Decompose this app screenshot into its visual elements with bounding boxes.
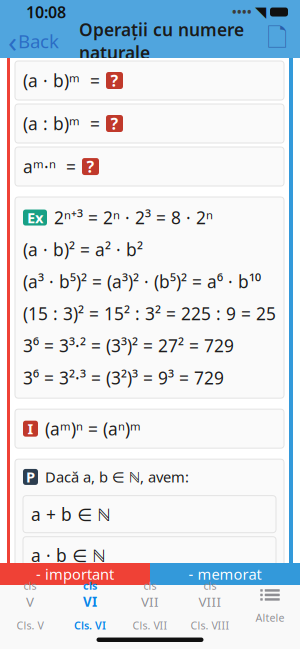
staticText: 🗋 (267, 20, 287, 62)
staticText: Altele (255, 610, 284, 625)
button[interactable]: - important (0, 563, 150, 585)
staticText: (15 : 3)² = 15² : 3² = 225 : 9 = 25 (23, 302, 276, 325)
staticText: cls (143, 578, 156, 593)
staticText: - important (36, 564, 114, 584)
staticText: (aᵐ)ⁿ = (aⁿ)ᵐ (45, 417, 141, 440)
staticText: ? (110, 113, 118, 134)
staticText: I (27, 419, 33, 438)
staticText: ? (110, 70, 118, 91)
staticText: Ex (27, 208, 43, 227)
staticText: ‹ (8, 21, 17, 60)
staticText: a + b ∈ ℕ (31, 503, 110, 526)
button[interactable]: ‹ (0, 16, 63, 65)
staticText: (a · b)² = a² · b² (23, 238, 143, 261)
staticText: ? (86, 156, 94, 177)
staticText: Back (18, 29, 59, 53)
button[interactable]: cls (0, 585, 60, 625)
staticText: cls (203, 578, 216, 593)
staticText: Dacă a, b ∈ ℕ, avem: (45, 467, 189, 487)
staticText: Cls. VI (74, 618, 106, 633)
staticText: a · b ∈ ℕ (31, 544, 105, 567)
staticText: 2ⁿ⁺³ = 2ⁿ · 2³ = 8 · 2ⁿ (54, 206, 213, 229)
staticText: (a³ · b⁵)² = (a³)² · (b⁵)² = a⁶ · b¹⁰ (23, 270, 261, 293)
staticText: (a · b)ᵐ = (23, 69, 100, 92)
staticText: (a : b)ᵐ = (23, 112, 100, 135)
staticText: Operații cu numere naturale (79, 18, 244, 64)
button[interactable]: cls (60, 585, 120, 625)
button[interactable]: Reveal answer (106, 72, 123, 89)
button[interactable]: cls (180, 585, 240, 625)
staticText: VII (141, 593, 159, 610)
staticText: Cls. VIII (190, 618, 229, 633)
staticText: aᵐ·ⁿ = (23, 155, 76, 178)
staticText: cls (83, 578, 97, 593)
staticText: VIII (198, 593, 221, 610)
staticText: •••• (232, 4, 252, 20)
staticText: VI (83, 593, 97, 610)
staticText: 10:08 (26, 1, 66, 23)
button[interactable]: Reveal answer (106, 115, 123, 132)
staticText: ◥ (255, 4, 266, 20)
staticText: P (26, 467, 35, 487)
button[interactable]: Reveal answer (82, 158, 99, 175)
staticText: 3⁶ = 3²·³ = (3²)³ = 9³ = 729 (23, 366, 224, 389)
button[interactable]: cls (120, 585, 180, 625)
staticText: cls (23, 578, 36, 593)
staticText: Cls. VII (132, 618, 167, 633)
staticText: - memorat (188, 564, 261, 584)
button[interactable]: Document (260, 26, 294, 56)
staticText: 3⁶ = 3³·² = (3³)² = 27² = 729 (23, 334, 234, 357)
staticText: Cls. V (16, 618, 43, 633)
button[interactable]: - memorat (150, 563, 300, 585)
button[interactable]: Altele (240, 585, 300, 625)
staticText: V (26, 593, 34, 610)
